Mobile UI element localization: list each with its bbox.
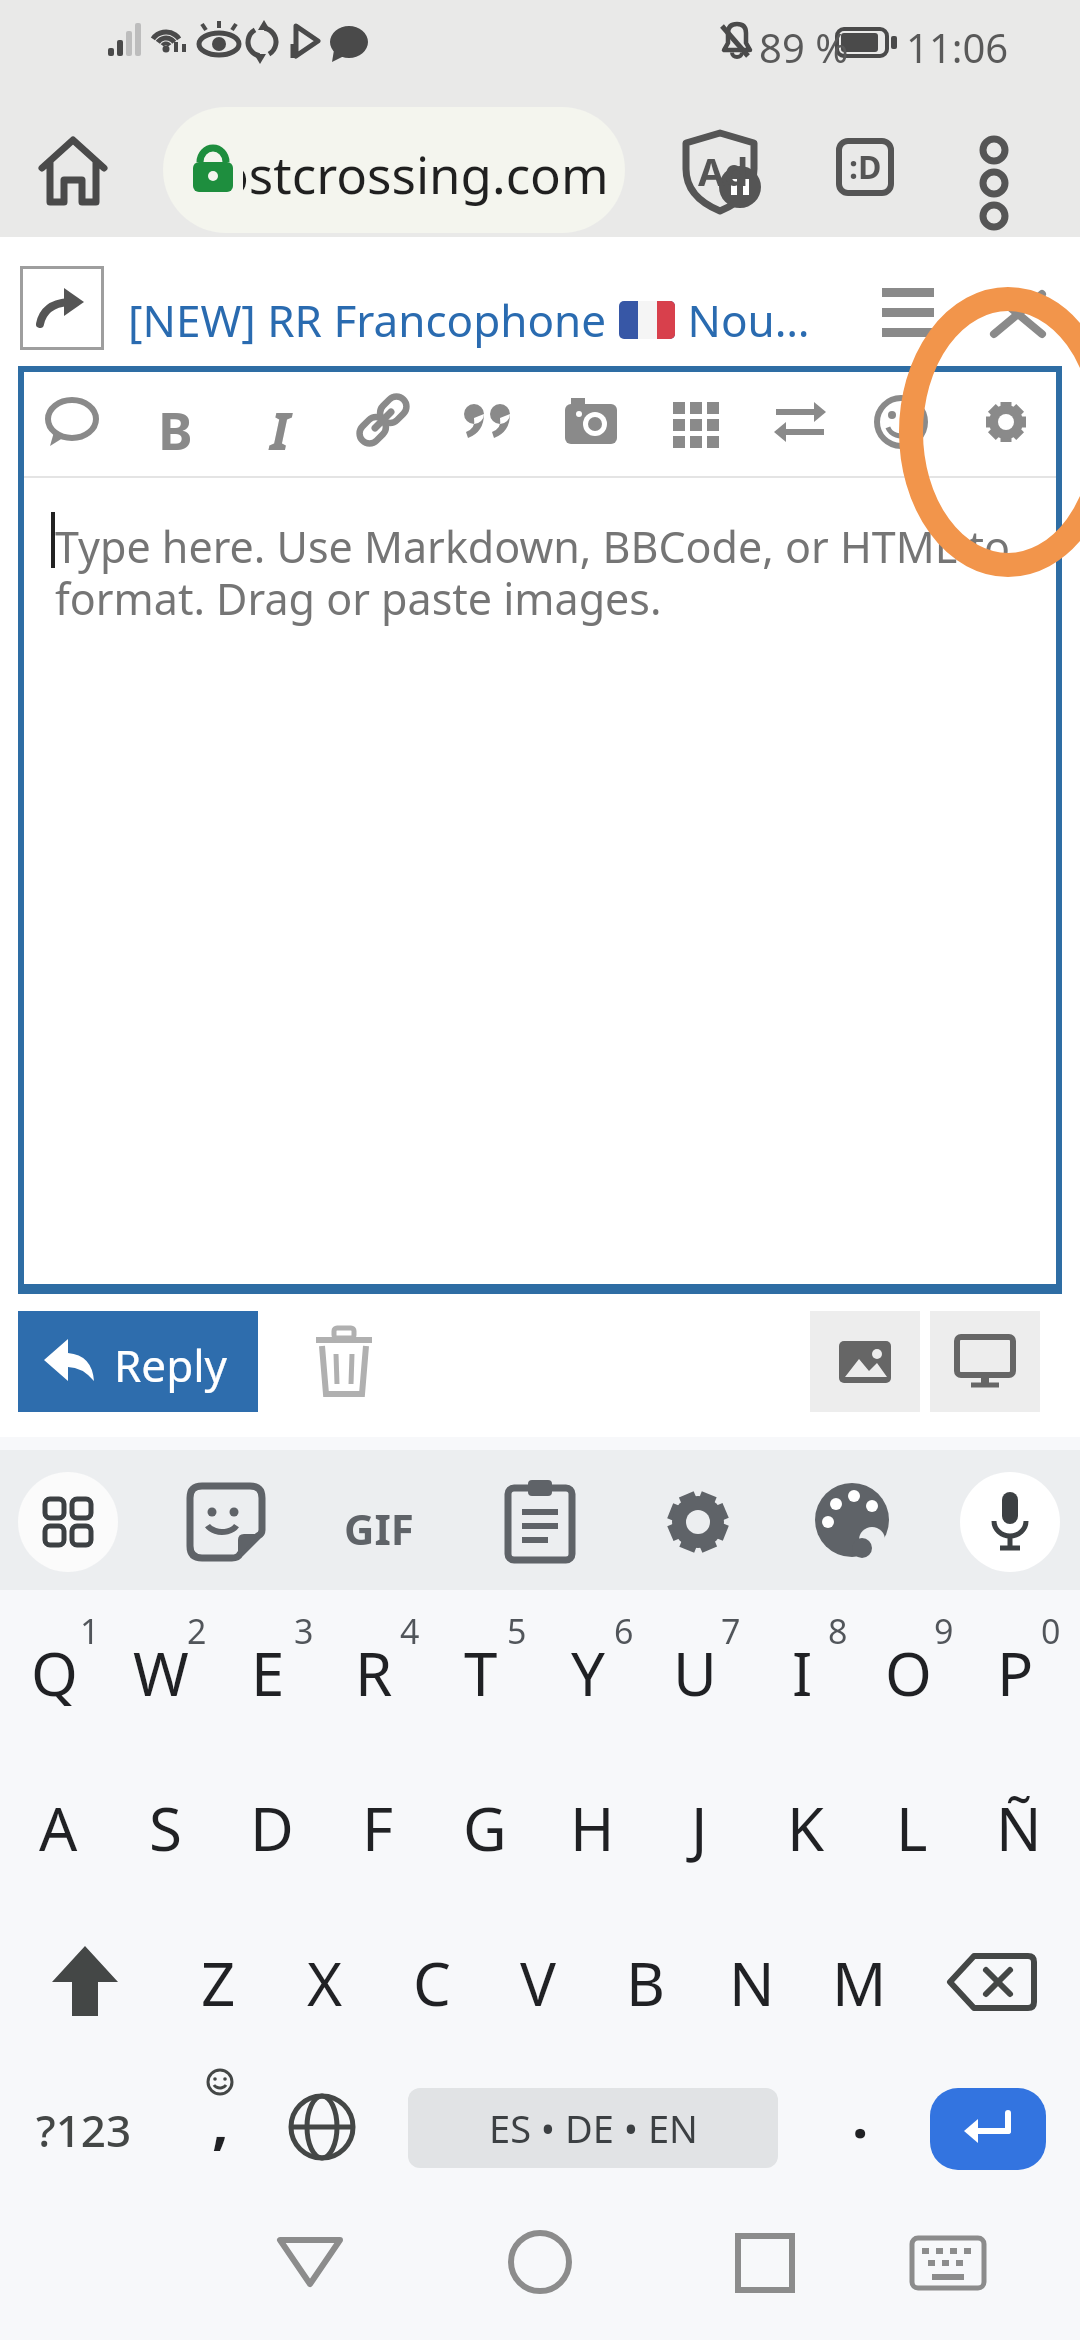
button[interactable]: E <box>218 1608 318 1738</box>
button[interactable] <box>178 1474 274 1570</box>
button[interactable] <box>18 1472 118 1572</box>
button[interactable] <box>663 388 727 456</box>
button[interactable]: J <box>649 1768 749 1888</box>
staticText: E <box>251 1632 285 1714</box>
staticText: Nou… <box>676 290 810 350</box>
button[interactable]: Z <box>168 1923 268 2043</box>
button[interactable] <box>960 1472 1060 1572</box>
button[interactable]: B <box>595 1923 695 2043</box>
button[interactable] <box>286 2093 358 2165</box>
button[interactable] <box>930 1311 1040 1412</box>
button[interactable] <box>872 278 944 350</box>
staticText: O <box>885 1632 932 1714</box>
button[interactable] <box>40 388 104 456</box>
button[interactable] <box>908 2230 988 2310</box>
staticText: V <box>520 1942 556 2024</box>
button[interactable] <box>974 388 1038 456</box>
button[interactable]: W <box>111 1608 211 1738</box>
button[interactable]: A <box>8 1768 108 1888</box>
staticText: 3 <box>294 1608 314 1654</box>
button[interactable] <box>806 1474 902 1570</box>
button[interactable]: K <box>756 1768 856 1888</box>
button[interactable]: Reply <box>18 1311 258 1412</box>
button[interactable] <box>272 2222 348 2298</box>
button[interactable]: G <box>435 1768 535 1888</box>
staticText: L <box>896 1787 928 1869</box>
staticText: 2 <box>187 1608 207 1654</box>
button[interactable]: T <box>431 1608 531 1738</box>
button[interactable]: M <box>809 1923 909 2043</box>
button[interactable]: F <box>328 1768 428 1888</box>
staticText: U <box>673 1632 717 1714</box>
button[interactable]: ostcrossing.com <box>163 107 625 233</box>
button[interactable] <box>456 388 520 456</box>
staticText: K <box>787 1787 825 1869</box>
button[interactable] <box>650 1474 746 1570</box>
button[interactable]: X <box>275 1923 375 2043</box>
staticText: 7 <box>721 1608 741 1654</box>
button[interactable] <box>351 388 415 456</box>
button[interactable]: Y <box>538 1608 638 1738</box>
button[interactable]: GIF <box>344 1500 414 1557</box>
staticText: H <box>570 1787 615 1869</box>
button[interactable] <box>869 388 933 456</box>
button[interactable]: L <box>862 1768 962 1888</box>
staticText: 11:06 <box>906 20 1009 74</box>
button[interactable]: ?123 <box>36 2100 132 2160</box>
button[interactable]: , <box>180 2060 260 2170</box>
button[interactable]: Ad <box>678 125 778 225</box>
button[interactable]: R <box>324 1608 424 1738</box>
staticText: 0 <box>1041 1608 1061 1654</box>
staticText: Type here. Use Markdown, BBCode, or HTML… <box>55 517 1010 576</box>
button[interactable] <box>20 266 104 350</box>
button[interactable]: D <box>222 1768 322 1888</box>
button[interactable]: Ñ <box>969 1768 1069 1888</box>
staticText: , <box>212 2082 229 2161</box>
staticText: 4 <box>400 1608 420 1654</box>
staticText: ostcrossing.com <box>218 139 609 208</box>
button[interactable] <box>768 388 832 456</box>
button[interactable]: . <box>820 2060 900 2170</box>
staticText: [NEW] RR Francophone <box>128 290 618 350</box>
button[interactable]: ES • DE • EN <box>408 2088 778 2168</box>
button[interactable] <box>730 2226 800 2296</box>
button[interactable] <box>492 1474 588 1570</box>
button[interactable] <box>30 128 116 214</box>
staticText: M <box>832 1942 887 2024</box>
staticText: 1 <box>80 1608 100 1654</box>
staticText: P <box>997 1632 1034 1714</box>
staticText: I <box>270 394 290 465</box>
button[interactable]: V <box>488 1923 588 2043</box>
staticText: 5 <box>507 1608 527 1654</box>
button[interactable]: I <box>752 1608 852 1738</box>
button[interactable]: U <box>645 1608 745 1738</box>
button[interactable] <box>810 1311 920 1412</box>
staticText: I <box>792 1632 813 1714</box>
button[interactable] <box>40 1938 130 2028</box>
button[interactable] <box>504 2224 576 2296</box>
button[interactable] <box>980 278 1060 358</box>
button[interactable]: P <box>965 1608 1065 1738</box>
button[interactable] <box>306 1324 382 1400</box>
staticText: D <box>250 1787 294 1869</box>
staticText: W <box>133 1632 189 1714</box>
staticText: F <box>362 1787 394 1869</box>
staticText: Reply <box>114 1335 228 1395</box>
staticText: N <box>729 1942 775 2024</box>
button[interactable]: H <box>542 1768 642 1888</box>
button[interactable] <box>962 132 1026 232</box>
button[interactable] <box>940 1938 1044 2042</box>
button[interactable]: N <box>702 1923 802 2043</box>
staticText: 6 <box>614 1608 634 1654</box>
button[interactable]: :D <box>836 138 894 196</box>
button[interactable] <box>559 388 623 456</box>
staticText: . <box>852 2076 869 2155</box>
button[interactable]: C <box>382 1923 482 2043</box>
button[interactable]: O <box>858 1608 958 1738</box>
staticText: Q <box>31 1632 78 1714</box>
button[interactable]: S <box>115 1768 215 1888</box>
button[interactable]: Q <box>4 1608 104 1738</box>
button[interactable] <box>930 2088 1046 2170</box>
staticText: 9 <box>934 1608 954 1654</box>
staticText: Ñ <box>996 1787 1042 1869</box>
